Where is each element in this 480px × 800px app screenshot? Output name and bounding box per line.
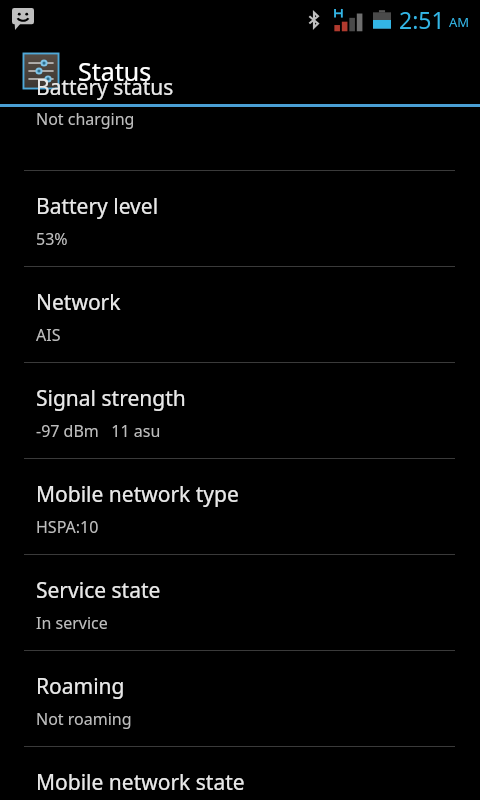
button[interactable]: Mobile network state <box>0 747 480 800</box>
staticText: Mobile network state <box>36 768 245 797</box>
button[interactable]: Roaming <box>0 651 480 746</box>
staticText: 53% <box>36 228 68 250</box>
button[interactable]: Signal strength <box>0 363 480 458</box>
staticText: Roaming <box>36 672 125 701</box>
staticText: AM <box>449 13 470 31</box>
staticText: In service <box>36 612 108 634</box>
button[interactable]: Status <box>0 38 480 103</box>
staticText: HSPA:10 <box>36 516 99 538</box>
button[interactable]: Network <box>0 267 480 362</box>
staticText: Signal strength <box>36 384 186 413</box>
other: New message <box>12 8 34 30</box>
button[interactable]: Service state <box>0 555 480 650</box>
staticText: Battery level <box>36 192 159 221</box>
staticText: Service state <box>36 576 161 605</box>
button[interactable]: Battery status <box>0 103 480 170</box>
staticText: Not roaming <box>36 708 132 730</box>
staticText: Network <box>36 288 121 317</box>
staticText: -97 dBm 11 asu <box>36 420 161 442</box>
staticText: Status <box>78 54 152 88</box>
staticText: Battery status <box>36 73 174 102</box>
button[interactable]: Mobile network type <box>0 459 480 554</box>
button[interactable]: Battery level <box>0 171 480 266</box>
staticText: AIS <box>36 324 61 346</box>
staticText: 2:51 <box>399 4 445 35</box>
staticText: Mobile network type <box>36 480 239 509</box>
staticText: Not charging <box>36 108 135 130</box>
